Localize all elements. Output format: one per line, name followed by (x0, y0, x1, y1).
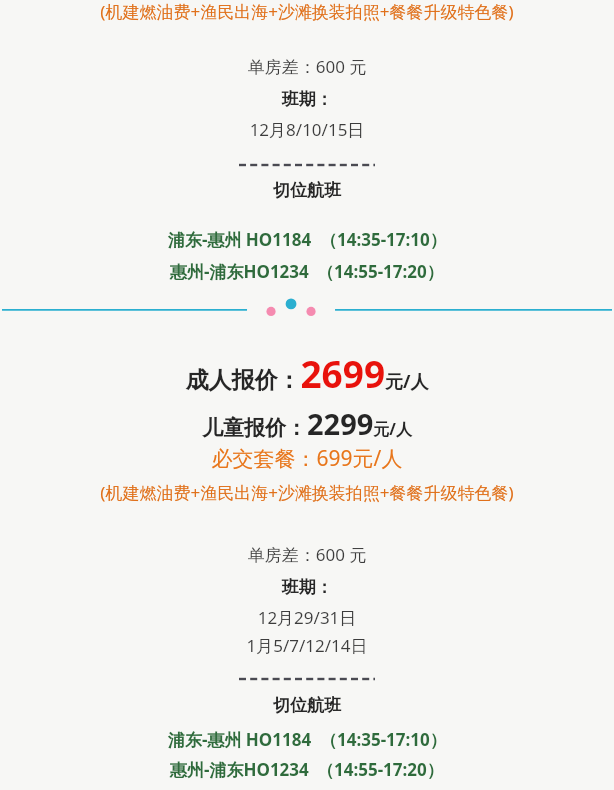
staticText: （14:35-17:10） (320, 228, 447, 251)
staticText: 12月29/31日 (0, 606, 614, 629)
staticText: 12月8/10/15日 (0, 118, 614, 141)
button[interactable]: 浦东-惠州 HO1184 (0, 728, 614, 751)
button[interactable]: 儿童报价：2299元/人 (0, 404, 614, 443)
staticText: 必交套餐：699元/人 (0, 444, 614, 473)
staticText: 单房差：600 元 (0, 543, 614, 566)
button[interactable]: 成人报价：2699元/人 (0, 348, 614, 398)
staticText: （14:55-17:20） (317, 758, 444, 781)
button[interactable]: 惠州-浦东HO1234 (0, 758, 614, 781)
staticText: 儿童报价：2299元/人 (0, 404, 614, 443)
staticText: 浦东-惠州 HO1184 (168, 228, 312, 251)
staticText: (机建燃油费+渔民出海+沙滩换装拍照+餐餐升级特色餐) (0, 0, 614, 23)
staticText: 单房差：600 元 (0, 55, 614, 78)
staticText: 1月5/7/12/14日 (0, 634, 614, 657)
button[interactable]: 浦东-惠州 HO1184 (0, 228, 614, 251)
staticText: 班期： (0, 577, 614, 598)
staticText: 班期： (0, 89, 614, 110)
staticText: 惠州-浦东HO1234 (170, 260, 309, 283)
staticText: （14:35-17:10） (320, 728, 447, 751)
button[interactable]: 惠州-浦东HO1234 (0, 260, 614, 283)
staticText: 切位航班 (0, 695, 614, 716)
staticText: 成人报价：2699元/人 (0, 348, 614, 398)
staticText: 浦东-惠州 HO1184 (168, 728, 312, 751)
staticText: （14:55-17:20） (317, 260, 444, 283)
staticText: (机建燃油费+渔民出海+沙滩换装拍照+餐餐升级特色餐) (0, 481, 614, 504)
staticText: 切位航班 (0, 180, 614, 201)
staticText: 惠州-浦东HO1234 (170, 758, 309, 781)
